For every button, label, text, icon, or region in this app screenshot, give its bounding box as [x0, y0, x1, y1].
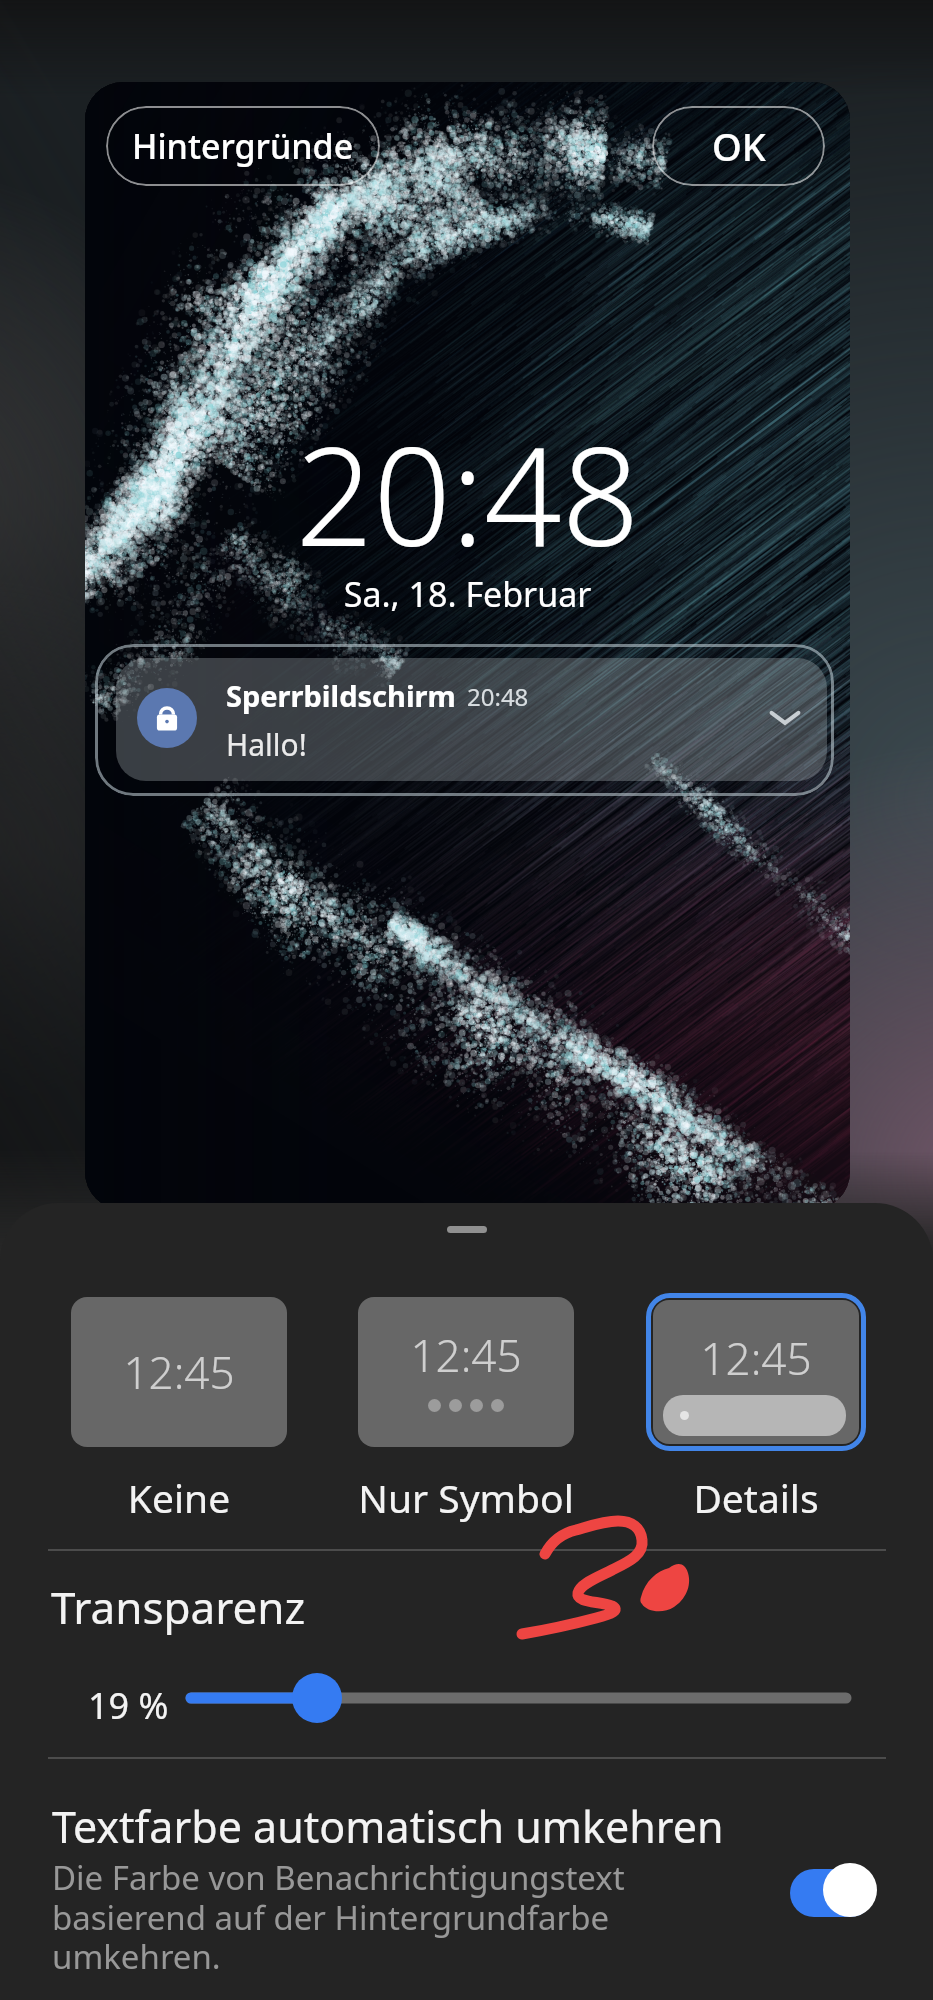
staticText: 20:48	[85, 401, 850, 586]
staticText: Sperrbildschirm	[226, 676, 456, 715]
staticText: Hintergründe	[132, 123, 354, 169]
staticText: OK	[712, 120, 766, 172]
staticText: 12:45	[358, 1325, 574, 1385]
button[interactable]: 12:45	[606, 1293, 906, 1524]
staticText: 12:45	[71, 1342, 287, 1402]
staticText: Hallo!	[226, 724, 307, 765]
button[interactable]: 12:45	[316, 1297, 616, 1524]
button[interactable]: Sperrbildschirm	[116, 658, 827, 781]
other: Benachrichtigung erweitern	[764, 696, 806, 738]
staticText: Textfarbe automatisch umkehren	[52, 1797, 812, 1856]
staticText: Die Farbe von Benachrichtigungstext basi…	[52, 1855, 652, 1978]
staticText: 12:45	[653, 1328, 859, 1388]
staticText: Keine	[29, 1471, 329, 1524]
staticText: Details	[606, 1471, 906, 1524]
staticText: Nur Symbol	[316, 1471, 616, 1524]
staticText: 20:48	[467, 680, 529, 713]
staticText: Sa., 18. Februar	[85, 571, 850, 617]
button[interactable]: Textfarbe automatisch umkehren	[788, 1863, 878, 1917]
button[interactable]: 12:45	[29, 1297, 329, 1524]
button[interactable]: OK	[652, 106, 825, 186]
staticText: 19 %	[88, 1681, 169, 1730]
staticText: Transparenz	[51, 1577, 306, 1637]
button[interactable]: Hintergründe	[106, 106, 380, 186]
button[interactable]: Transparenz	[180, 1670, 870, 1726]
